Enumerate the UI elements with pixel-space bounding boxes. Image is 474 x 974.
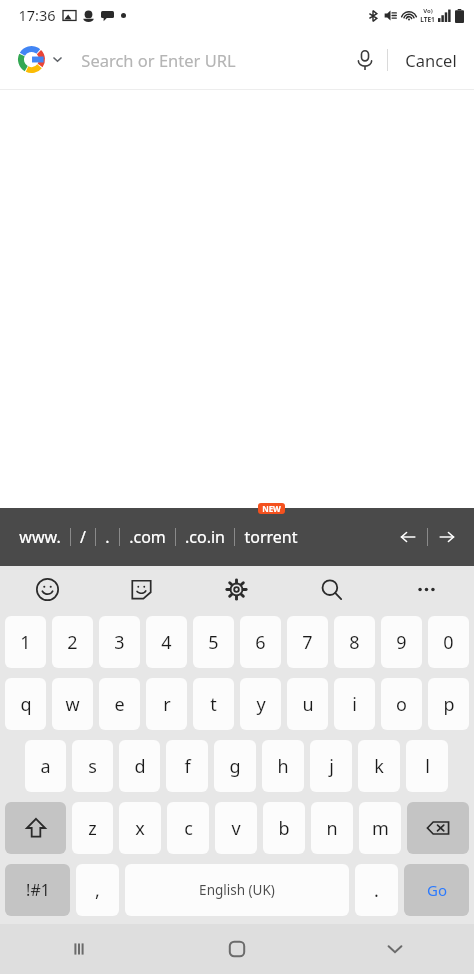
button[interactable]: 4 (146, 616, 187, 668)
button[interactable]: n (311, 802, 353, 854)
button[interactable] (14, 42, 67, 77)
button[interactable]: , (76, 864, 119, 916)
button[interactable]: 8 (334, 616, 375, 668)
button[interactable]: / (71, 516, 95, 558)
button[interactable]: l (406, 740, 448, 792)
staticText: w (65, 692, 80, 717)
staticText: NEW (262, 503, 281, 514)
staticText: 6 (255, 630, 266, 655)
button[interactable]: g (214, 740, 256, 792)
staticText: s (88, 754, 97, 779)
staticText: !#1 (26, 879, 50, 901)
button[interactable]: Next (428, 518, 466, 556)
staticText: .co.in (185, 526, 225, 548)
button[interactable]: j (310, 740, 352, 792)
button[interactable]: 5 (193, 616, 234, 668)
staticText: p (443, 692, 455, 717)
button[interactable]: Cancel (388, 37, 474, 83)
staticText: LTE1 (420, 15, 435, 24)
staticText: Cancel (405, 49, 457, 71)
button[interactable]: x (119, 802, 161, 854)
staticText: b (278, 816, 290, 841)
staticText: 4 (161, 630, 172, 655)
staticText: 2 (67, 630, 78, 655)
button[interactable]: i (334, 678, 375, 730)
button[interactable]: 9 (381, 616, 422, 668)
staticText: u (302, 692, 314, 717)
button[interactable]: t (193, 678, 234, 730)
button[interactable]: torrent (235, 516, 307, 558)
button[interactable]: Previous (389, 518, 427, 556)
button[interactable]: u (287, 678, 328, 730)
button[interactable]: 2 (52, 616, 93, 668)
button[interactable]: h (262, 740, 304, 792)
staticText: t (210, 692, 217, 717)
button[interactable]: Go (404, 864, 469, 916)
button[interactable]: z (72, 802, 113, 854)
staticText: v (231, 816, 241, 841)
button[interactable]: Emoji (0, 566, 94, 613)
button[interactable]: q (5, 678, 46, 730)
button[interactable]: Hide keyboard (316, 924, 474, 974)
staticText: a (40, 754, 51, 779)
staticText: n (326, 816, 338, 841)
button[interactable]: Voice search (343, 38, 387, 82)
button[interactable]: d (119, 740, 160, 792)
button[interactable]: s (72, 740, 113, 792)
button[interactable]: Shift (5, 802, 66, 854)
staticText: i (352, 692, 357, 717)
button[interactable]: w (52, 678, 93, 730)
button[interactable]: 0 (428, 616, 469, 668)
staticText: l (425, 754, 430, 779)
button[interactable]: Stickers (94, 566, 189, 613)
staticText: English (UK) (199, 881, 275, 899)
staticText: Go (427, 880, 447, 900)
button[interactable]: k (358, 740, 400, 792)
staticText: h (277, 754, 289, 779)
button[interactable]: Settings (189, 566, 284, 613)
button[interactable]: Search (284, 566, 379, 613)
button[interactable]: e (99, 678, 140, 730)
staticText: 1 (20, 630, 31, 655)
button[interactable]: Search or Enter URL (81, 49, 343, 71)
staticText: www. (19, 526, 61, 548)
button[interactable]: Backspace (407, 802, 469, 854)
staticText: g (229, 754, 241, 779)
button[interactable]: r (146, 678, 187, 730)
button[interactable]: !#1 (5, 864, 70, 916)
staticText: o (396, 692, 407, 717)
button[interactable]: More options (379, 566, 474, 613)
button[interactable]: 6 (240, 616, 281, 668)
staticText: torrent (244, 526, 298, 548)
staticText: Search or Enter URL (81, 49, 236, 71)
button[interactable]: Home (158, 924, 316, 974)
button[interactable]: c (167, 802, 209, 854)
button[interactable]: f (166, 740, 208, 792)
staticText: 17:36 (18, 5, 56, 25)
button[interactable]: b (263, 802, 305, 854)
button[interactable]: 1 (5, 616, 46, 668)
button[interactable]: 3 (99, 616, 140, 668)
button[interactable]: .com (120, 516, 175, 558)
staticText: d (134, 754, 146, 779)
button[interactable]: o (381, 678, 422, 730)
button[interactable]: www. (10, 516, 70, 558)
staticText: 9 (396, 630, 407, 655)
button[interactable]: v (215, 802, 257, 854)
button[interactable]: 7 (287, 616, 328, 668)
button[interactable]: y (240, 678, 281, 730)
staticText: . (374, 878, 379, 903)
staticText: k (374, 754, 384, 779)
staticText: j (329, 754, 334, 779)
staticText: y (256, 692, 266, 717)
button[interactable]: English (UK) (125, 864, 349, 916)
button[interactable]: . (96, 516, 119, 558)
staticText: f (184, 754, 191, 779)
staticText: m (372, 816, 389, 841)
button[interactable]: . (355, 864, 398, 916)
button[interactable]: a (25, 740, 66, 792)
button[interactable]: Recents (0, 924, 158, 974)
button[interactable]: m (359, 802, 401, 854)
button[interactable]: .co.in (176, 516, 234, 558)
button[interactable]: p (428, 678, 469, 730)
